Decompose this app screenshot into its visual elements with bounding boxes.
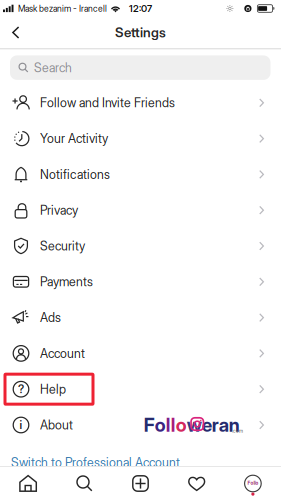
staticText: 12:07 (129, 3, 152, 14)
staticText: ? (18, 382, 24, 396)
staticText: o (155, 414, 166, 436)
staticText: .com (232, 428, 243, 434)
staticText: Help (40, 382, 66, 397)
staticText: Payments (40, 274, 93, 289)
staticText: eran (202, 414, 240, 436)
button[interactable]: Your Activity (0, 121, 281, 156)
button[interactable]: Search (10, 55, 270, 80)
staticText: o (176, 414, 187, 436)
button[interactable]: Account (0, 335, 281, 371)
staticText: Follow and Invite Friends (40, 95, 175, 110)
staticText: Notifications (40, 167, 110, 182)
staticText: F (144, 414, 155, 436)
staticText: w (187, 414, 202, 436)
button[interactable]: Notifications (0, 156, 281, 192)
button[interactable]: Profile (225, 474, 281, 493)
staticText: Mask bezanim - Irancell (18, 3, 107, 14)
button[interactable]: ? (0, 371, 281, 407)
staticText: Ads (40, 310, 61, 325)
button[interactable]: Back (0, 19, 31, 46)
button[interactable]: Create (112, 474, 169, 493)
staticText: l (171, 414, 176, 436)
button[interactable]: Search (56, 474, 112, 493)
staticText: Security (40, 238, 85, 253)
button[interactable]: Home (0, 474, 56, 493)
staticText: About (40, 417, 73, 432)
staticText: Switch to Professional Account (11, 455, 180, 470)
staticText: i (19, 418, 22, 432)
button[interactable]: Payments (0, 264, 281, 300)
staticText: Settings (115, 24, 166, 40)
button[interactable]: Ads (0, 300, 281, 335)
staticText: Your Activity (40, 131, 108, 146)
staticText: Privacy (40, 203, 78, 218)
button[interactable]: Activity (169, 474, 225, 493)
button[interactable]: Switch to Professional Account (0, 443, 281, 470)
staticText: Follo (247, 480, 258, 486)
button[interactable]: Follow and Invite Friends (0, 85, 281, 121)
staticText: Search (34, 60, 72, 75)
button[interactable]: Privacy (0, 192, 281, 228)
button[interactable]: i (0, 407, 281, 443)
staticText: Account (40, 346, 85, 361)
button[interactable]: Security (0, 228, 281, 264)
staticText: l (166, 414, 171, 436)
